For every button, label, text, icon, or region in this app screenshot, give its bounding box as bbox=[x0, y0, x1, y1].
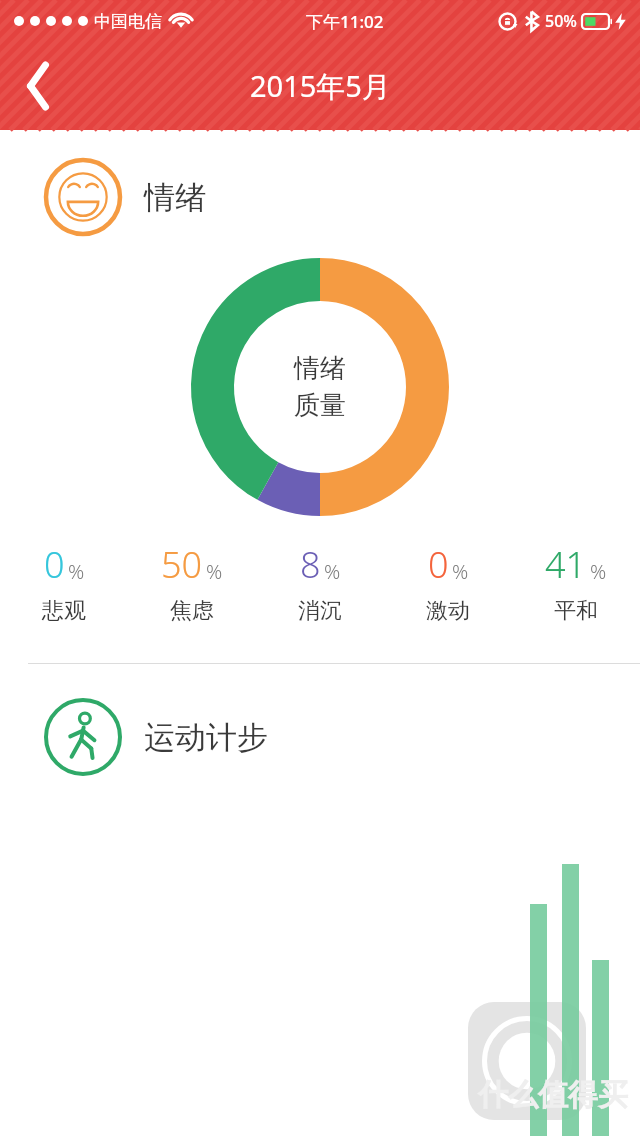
staticText: 0 bbox=[428, 540, 449, 589]
staticText: 0 bbox=[44, 540, 65, 589]
staticText: % bbox=[590, 558, 607, 585]
staticText: 2015年5月 bbox=[250, 66, 391, 106]
staticText: 中国电信 bbox=[94, 11, 162, 32]
button[interactable]: 8 bbox=[256, 540, 384, 625]
button[interactable]: 情绪 bbox=[44, 158, 640, 236]
other: Wi-Fi bbox=[170, 13, 192, 29]
staticText: 平和 bbox=[554, 597, 598, 625]
other: Rotation lock bbox=[498, 12, 517, 31]
staticText: 运动计步 bbox=[144, 718, 268, 757]
other: Bluetooth bbox=[525, 11, 539, 31]
staticText: 50 bbox=[161, 540, 203, 589]
staticText: 情绪 bbox=[144, 178, 206, 217]
button[interactable]: 50 bbox=[128, 540, 256, 625]
staticText: % bbox=[68, 558, 85, 585]
button[interactable]: 0 bbox=[384, 540, 512, 625]
staticText: 质量 bbox=[294, 389, 346, 422]
staticText: 50% bbox=[545, 10, 577, 32]
staticText: 消沉 bbox=[298, 597, 342, 625]
staticText: 情绪 bbox=[294, 352, 346, 385]
staticText: 下午11:02 bbox=[306, 10, 384, 33]
button[interactable]: 41 bbox=[512, 540, 640, 625]
other: Battery 50 percent bbox=[582, 14, 612, 29]
staticText: % bbox=[206, 558, 223, 585]
staticText: % bbox=[324, 558, 341, 585]
staticText: 焦虑 bbox=[170, 597, 214, 625]
staticText: % bbox=[452, 558, 469, 585]
button[interactable]: Back bbox=[6, 56, 66, 116]
staticText: 激动 bbox=[426, 597, 470, 625]
staticText: 什么值得买 bbox=[478, 1076, 628, 1114]
button[interactable]: 运动计步 bbox=[44, 698, 640, 776]
button[interactable]: 0 bbox=[0, 540, 128, 625]
staticText: 8 bbox=[300, 540, 321, 589]
staticText: 41 bbox=[545, 540, 587, 589]
staticText: 悲观 bbox=[42, 597, 86, 625]
